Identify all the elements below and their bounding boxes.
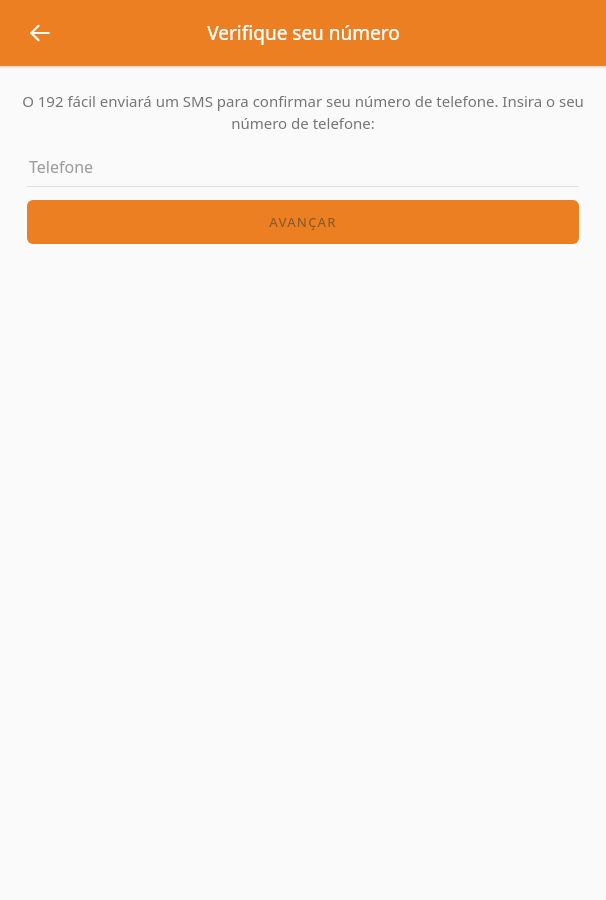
staticText: AVANÇAR (269, 213, 337, 231)
staticText: Telefone (29, 156, 94, 178)
button[interactable]: AVANÇAR (27, 200, 579, 244)
button[interactable]: Back (16, 9, 64, 57)
staticText: O 192 fácil enviará um SMS para confirma… (18, 91, 588, 134)
staticText: Verifique seu número (207, 20, 400, 46)
button[interactable]: Telefone (27, 152, 579, 187)
